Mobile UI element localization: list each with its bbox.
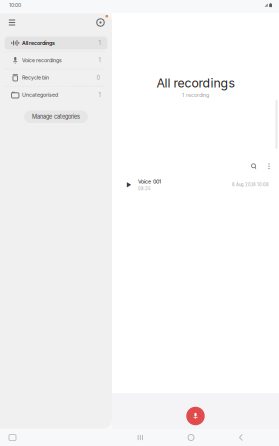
- staticText: Uncategorised: [22, 92, 58, 98]
- button[interactable]: Recents: [133, 430, 148, 445]
- staticText: 1: [98, 40, 100, 46]
- button[interactable]: Recycle bin: [4, 71, 107, 84]
- button[interactable]: Search: [248, 160, 260, 172]
- button[interactable]: Manage categories: [24, 110, 88, 123]
- button[interactable]: Voice recordings: [4, 54, 107, 67]
- staticText: Voice recordings: [22, 57, 62, 63]
- staticText: Recycle bin: [22, 74, 49, 81]
- button[interactable]: Keyboard: [5, 430, 20, 444]
- staticText: 8 Aug 2024 10:08: [232, 182, 269, 187]
- staticText: All recordings: [22, 40, 55, 46]
- staticText: 0: [96, 74, 100, 81]
- button[interactable]: Menu: [3, 13, 21, 31]
- button[interactable]: Uncategorised: [4, 88, 107, 101]
- button[interactable]: Home: [183, 429, 199, 445]
- button[interactable]: More options: [263, 160, 274, 172]
- staticText: Voice 001: [138, 178, 161, 185]
- staticText: 1: [98, 57, 100, 64]
- staticText: 1: [98, 91, 100, 98]
- staticText: All recordings: [156, 75, 234, 90]
- button[interactable]: Back: [234, 429, 248, 445]
- staticText: 10:00: [9, 2, 21, 8]
- button[interactable]: Voice 001: [112, 175, 279, 195]
- staticText: 1 recording: [182, 92, 209, 98]
- button[interactable]: All recordings: [4, 36, 107, 49]
- staticText: Manage categories: [32, 113, 80, 120]
- button[interactable]: Settings: [92, 14, 108, 30]
- staticText: 08:35: [138, 186, 151, 191]
- button[interactable]: Record: [186, 407, 205, 425]
